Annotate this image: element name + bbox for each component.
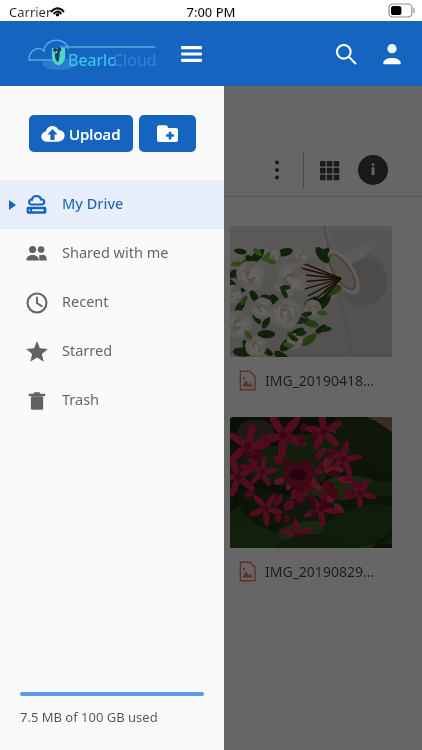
staticText: Upload — [69, 124, 121, 144]
staticText: 7.5 MB of 100 GB used — [20, 708, 158, 726]
staticText: Cloud — [113, 49, 157, 71]
button[interactable]: New folder — [139, 115, 196, 152]
staticText: Bearlo — [68, 49, 117, 71]
staticText: Trash — [62, 389, 100, 409]
button[interactable]: Account — [374, 36, 410, 72]
staticText: Starred — [62, 340, 113, 360]
button[interactable]: Recent — [0, 278, 224, 327]
staticText: Shared with me — [62, 242, 169, 262]
button[interactable]: Grid view — [313, 154, 345, 186]
button[interactable]: Trash — [0, 376, 224, 425]
button[interactable]: Upload — [29, 115, 133, 152]
button[interactable]: My Drive — [0, 180, 224, 229]
button[interactable]: IMG_20190829… — [230, 417, 392, 594]
button[interactable]: Menu — [173, 36, 209, 72]
button[interactable]: IMG_20190418… — [230, 226, 392, 403]
staticText: Recent — [62, 291, 109, 311]
button[interactable]: Starred — [0, 327, 224, 376]
button[interactable]: Shared with me — [0, 229, 224, 278]
button[interactable]: More options — [261, 154, 293, 186]
staticText: Carrier — [9, 3, 52, 21]
staticText: IMG_20190418… — [265, 371, 374, 390]
button[interactable]: Search — [328, 36, 364, 72]
button[interactable]: Info — [358, 155, 388, 185]
staticText: My Drive — [62, 193, 124, 213]
staticText: IMG_20190829… — [265, 562, 374, 581]
staticText: 7:00 PM — [0, 3, 422, 21]
